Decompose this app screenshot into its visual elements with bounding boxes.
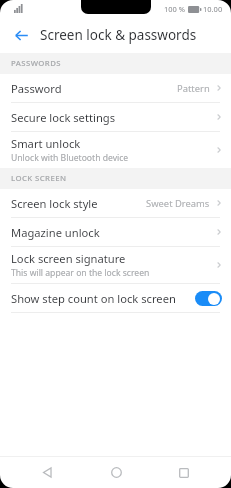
staticText: Screen lock & passwords [40,26,197,44]
button[interactable]: Home [94,457,138,488]
staticText: Sweet Dreams [146,197,210,210]
staticText: Show step count on lock screen [11,291,195,306]
staticText: PASSWORDS [11,58,61,69]
staticText: 10.00 [203,4,223,14]
button[interactable]: Password [0,74,231,103]
button[interactable]: Screen lock style [0,189,231,218]
staticText: LOCK SCREEN [11,173,67,184]
staticText: Unlock with Bluetooth device [11,152,129,164]
button[interactable]: Secure lock settings [0,103,231,132]
button[interactable]: Back [6,20,36,50]
button[interactable]: Back [25,457,69,488]
staticText: Secure lock settings [11,110,116,125]
staticText: 100 % [164,4,186,14]
button[interactable]: Magazine unlock [0,218,231,247]
staticText: This will appear on the lock screen [11,267,150,279]
button[interactable]: Lock screen signature [0,247,231,284]
staticText: Magazine unlock [11,225,100,240]
staticText: Smart unlock [11,136,81,151]
button[interactable]: Show step count on lock screen [0,284,231,313]
staticText: Pattern [177,82,210,95]
staticText: Password [11,81,62,96]
staticText: Lock screen signature [11,251,126,266]
button[interactable]: Recent apps [162,457,206,488]
staticText: Screen lock style [11,196,98,211]
button[interactable]: Smart unlock [0,132,231,168]
